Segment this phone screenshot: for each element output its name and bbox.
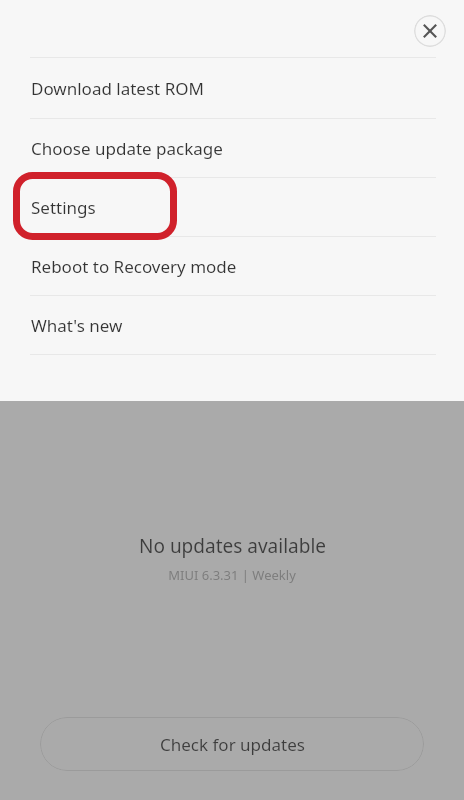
button[interactable]: Reboot to Recovery mode	[0, 237, 464, 295]
staticText: Reboot to Recovery mode	[31, 255, 237, 278]
staticText: Check for updates	[160, 733, 305, 756]
button[interactable]: What's new	[0, 296, 464, 354]
staticText: Settings	[31, 196, 96, 219]
staticText: No updates available	[139, 533, 326, 559]
staticText: Download latest ROM	[31, 77, 204, 100]
button[interactable]: Check for updates	[40, 717, 424, 771]
button[interactable]: Close	[414, 15, 446, 47]
staticText: Choose update package	[31, 137, 223, 160]
staticText: What's new	[31, 314, 123, 337]
staticText: MIUI 6.3.31 | Weekly	[168, 566, 296, 584]
button[interactable]: Settings	[0, 178, 464, 236]
button[interactable]: Download latest ROM	[0, 58, 464, 118]
button[interactable]: Choose update package	[0, 119, 464, 177]
